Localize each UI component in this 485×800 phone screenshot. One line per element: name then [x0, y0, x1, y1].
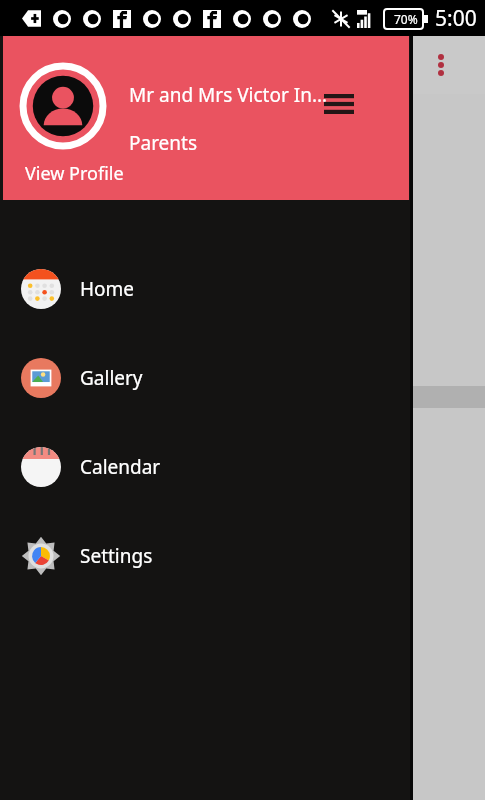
staticText: 5:00: [435, 4, 477, 33]
staticText: Calendar: [80, 454, 161, 480]
staticText: View Profile: [25, 161, 124, 186]
button[interactable]: Gallery: [0, 333, 410, 422]
button[interactable]: More options: [423, 47, 459, 83]
staticText: Mr and Mrs Victor In…: [129, 82, 327, 108]
staticText: Gallery: [80, 365, 143, 391]
button[interactable]: Menu: [319, 84, 359, 124]
staticText: Settings: [80, 543, 153, 569]
button[interactable]: Settings: [0, 511, 410, 600]
staticText: em Mic: [2, 341, 60, 364]
staticText: Home: [80, 276, 135, 302]
button[interactable]: Home: [0, 244, 410, 333]
staticText: 70%: [394, 11, 418, 27]
button[interactable]: em Mic: [0, 96, 485, 386]
staticText: Parents: [129, 130, 198, 156]
button[interactable]: Calendar: [0, 422, 410, 511]
button[interactable]: View Profile: [3, 36, 409, 200]
